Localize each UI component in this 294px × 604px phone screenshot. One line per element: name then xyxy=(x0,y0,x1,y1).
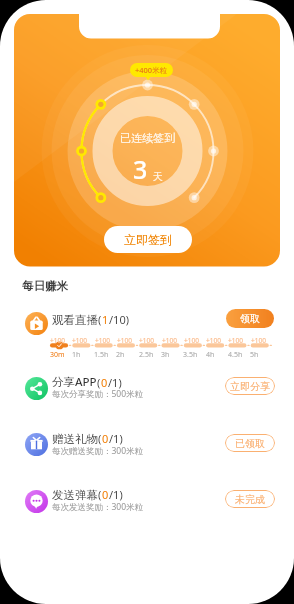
staticText: 30m xyxy=(50,350,65,360)
staticText: 每日赚米 xyxy=(22,279,68,293)
staticText: 每次赠送奖励：300米粒 xyxy=(52,445,144,457)
button[interactable]: 未完成 xyxy=(225,490,275,508)
staticText: 每次发送奖励：300米粒 xyxy=(52,501,144,513)
button[interactable]: 已领取 xyxy=(225,434,275,452)
staticText: 0 xyxy=(102,487,109,502)
staticText: 1.5h xyxy=(94,350,109,360)
staticText: 0 xyxy=(101,375,108,390)
staticText: /1) xyxy=(109,487,123,502)
button[interactable]: 领取 xyxy=(226,309,274,328)
staticText: +100 xyxy=(50,336,65,345)
staticText: /10) xyxy=(109,312,129,327)
staticText: 立即分享 xyxy=(230,380,270,393)
staticText: 未完成 xyxy=(235,493,265,506)
staticText: 2h xyxy=(116,350,125,360)
staticText: ( xyxy=(97,375,101,390)
staticText: 1 xyxy=(102,312,109,327)
staticText: 3h xyxy=(161,350,170,360)
staticText: 4h xyxy=(206,350,215,360)
staticText: ( xyxy=(98,431,102,446)
staticText: +100 xyxy=(139,336,154,345)
staticText: /1) xyxy=(108,375,122,390)
staticText: +100 xyxy=(184,336,199,345)
staticText: 已连续签到 xyxy=(97,131,198,145)
staticText: 赠送礼物 xyxy=(52,432,98,446)
staticText: 每次分享奖励：500米粒 xyxy=(52,388,144,400)
staticText: +400米粒 xyxy=(135,65,168,75)
staticText: +100 xyxy=(117,336,132,345)
button[interactable]: 立即分享 xyxy=(225,377,275,395)
staticText: 立即签到 xyxy=(124,232,172,247)
staticText: 4.5h xyxy=(228,350,243,360)
staticText: 观看直播 xyxy=(52,313,98,327)
staticText: ( xyxy=(98,487,102,502)
staticText: +100 xyxy=(72,336,87,345)
staticText: ( xyxy=(98,312,102,327)
staticText: 已领取 xyxy=(235,437,265,450)
staticText: +100 xyxy=(206,336,221,345)
button[interactable]: 立即签到 xyxy=(104,226,192,253)
staticText: 0 xyxy=(102,431,109,446)
staticText: 2.5h xyxy=(139,350,154,360)
staticText: +100 xyxy=(228,336,243,345)
staticText: /1) xyxy=(109,431,123,446)
staticText: +100 xyxy=(95,336,110,345)
staticText: 5h xyxy=(250,350,259,360)
staticText: 发送弹幕 xyxy=(52,488,98,502)
staticText: 领取 xyxy=(240,312,260,325)
staticText: +100 xyxy=(251,336,266,345)
staticText: +100 xyxy=(162,336,177,345)
staticText: 1h xyxy=(72,350,81,360)
staticText: 天 xyxy=(153,170,163,183)
staticText: 3 xyxy=(133,152,148,186)
staticText: 分享APP xyxy=(52,374,97,390)
staticText: 3.5h xyxy=(183,350,198,360)
